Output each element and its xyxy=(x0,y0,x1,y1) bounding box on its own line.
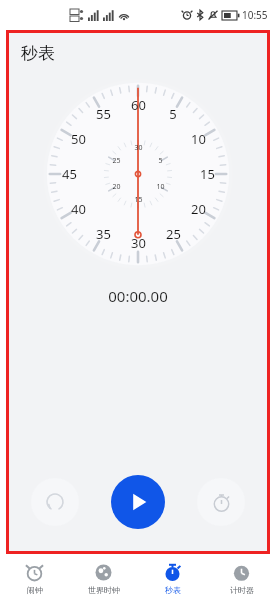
staticText: 20 xyxy=(191,200,206,218)
button[interactable]: 秒表 xyxy=(138,559,207,595)
staticText: 秒表 xyxy=(21,43,55,64)
staticText: 45 xyxy=(62,165,77,183)
button[interactable]: Start xyxy=(111,475,165,529)
staticText: 40 xyxy=(71,200,86,218)
staticText: 世界时钟 xyxy=(88,585,120,595)
staticText: 计时器 xyxy=(230,585,254,595)
staticText: 10 xyxy=(156,182,165,192)
button[interactable]: Lap xyxy=(31,478,79,526)
staticText: 50 xyxy=(71,130,86,148)
staticText: 闹钟 xyxy=(27,585,43,595)
staticText: 5 xyxy=(169,105,177,123)
staticText: 10 xyxy=(191,130,206,148)
staticText: 25 xyxy=(112,156,121,166)
staticText: 00:00.00 xyxy=(108,286,168,306)
staticText: 5 xyxy=(158,156,163,166)
staticText: 秒表 xyxy=(165,585,181,595)
staticText: 25 xyxy=(166,225,181,243)
staticText: 15 xyxy=(200,165,215,183)
staticText: 30 xyxy=(134,143,143,153)
staticText: 20 xyxy=(112,182,121,192)
button[interactable]: Timer xyxy=(197,478,245,526)
button[interactable]: 闹钟 xyxy=(0,559,69,595)
staticText: 35 xyxy=(96,225,111,243)
button[interactable]: 计时器 xyxy=(207,559,276,595)
button[interactable]: 世界时钟 xyxy=(69,559,138,595)
staticText: 55 xyxy=(96,105,111,123)
staticText: 15 xyxy=(134,195,143,205)
staticText: 60 xyxy=(131,96,146,114)
staticText: 10:55 xyxy=(242,8,268,22)
staticText: 30 xyxy=(131,234,146,252)
